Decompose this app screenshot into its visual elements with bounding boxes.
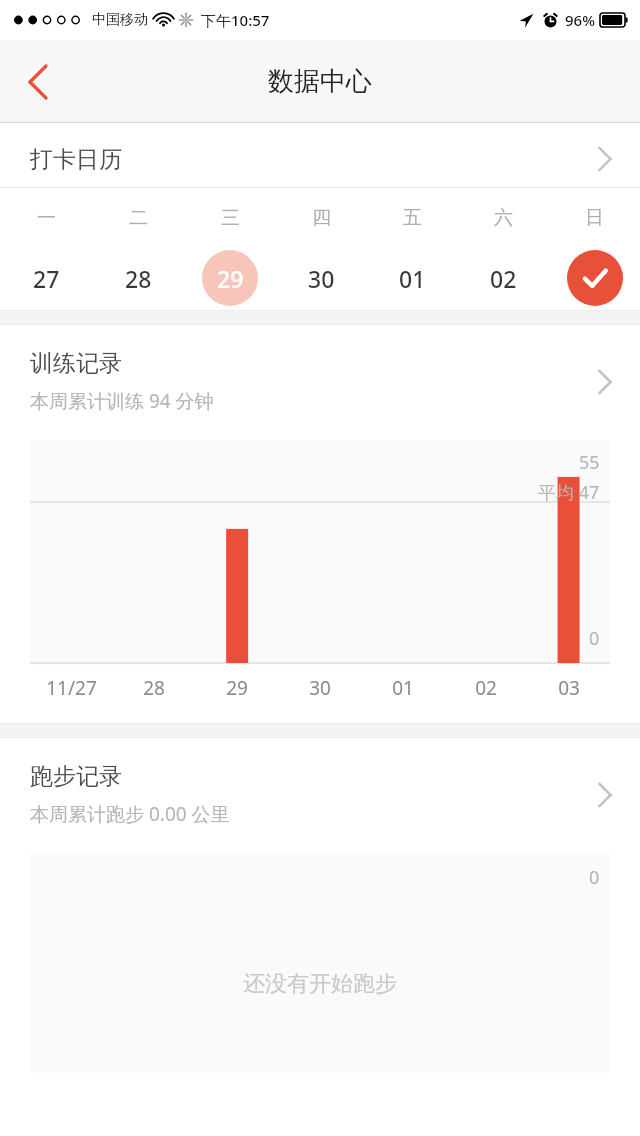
staticText: 02 <box>490 263 517 294</box>
staticText: 数据中心 <box>268 65 372 98</box>
staticText: 0 <box>589 626 600 651</box>
staticText: 还没有开始跑步 <box>243 970 397 998</box>
staticText: 本周累计训练 94 分钟 <box>30 388 214 414</box>
button[interactable]: 打卡日历 <box>0 131 640 187</box>
button[interactable]: 29 <box>184 250 276 306</box>
button[interactable]: 27 <box>0 250 92 306</box>
staticText: 训练记录 <box>30 349 122 378</box>
staticText: 02 <box>475 675 497 701</box>
staticText: 四 <box>312 206 331 230</box>
staticText: 11/27 <box>46 675 97 701</box>
button[interactable]: 今日已打卡 <box>549 250 640 306</box>
button[interactable]: Back <box>8 54 64 110</box>
staticText: 01 <box>399 263 426 294</box>
staticText: 03 <box>558 675 580 701</box>
staticText: 30 <box>308 263 335 294</box>
staticText: 中国移动 <box>92 11 148 29</box>
staticText: 一 <box>37 206 56 230</box>
staticText: 六 <box>494 206 513 230</box>
staticText: 三 <box>221 206 240 230</box>
staticText: 二 <box>129 206 148 230</box>
staticText: 下午10:57 <box>201 10 270 30</box>
staticText: 五 <box>403 206 422 230</box>
staticText: 29 <box>217 263 244 294</box>
button[interactable]: 跑步记录 <box>0 762 640 827</box>
staticText: 本周累计跑步 0.00 公里 <box>30 801 230 827</box>
staticText: 平均 47 <box>538 480 600 505</box>
button[interactable]: 01 <box>367 250 458 306</box>
staticText: 96% <box>565 10 595 30</box>
staticText: 29 <box>226 675 248 701</box>
staticText: 01 <box>392 675 414 701</box>
button[interactable]: 02 <box>458 250 549 306</box>
staticText: 55 <box>579 450 600 475</box>
staticText: 28 <box>143 675 165 701</box>
staticText: 打卡日历 <box>30 145 588 174</box>
button[interactable]: 28 <box>92 250 184 306</box>
button[interactable]: 30 <box>276 250 367 306</box>
staticText: 日 <box>585 206 604 230</box>
staticText: 30 <box>309 675 331 701</box>
staticText: 28 <box>125 263 152 294</box>
staticText: 27 <box>33 263 60 294</box>
button[interactable]: 训练记录 <box>0 349 640 414</box>
staticText: 跑步记录 <box>30 762 122 791</box>
staticText: 0 <box>589 865 600 890</box>
